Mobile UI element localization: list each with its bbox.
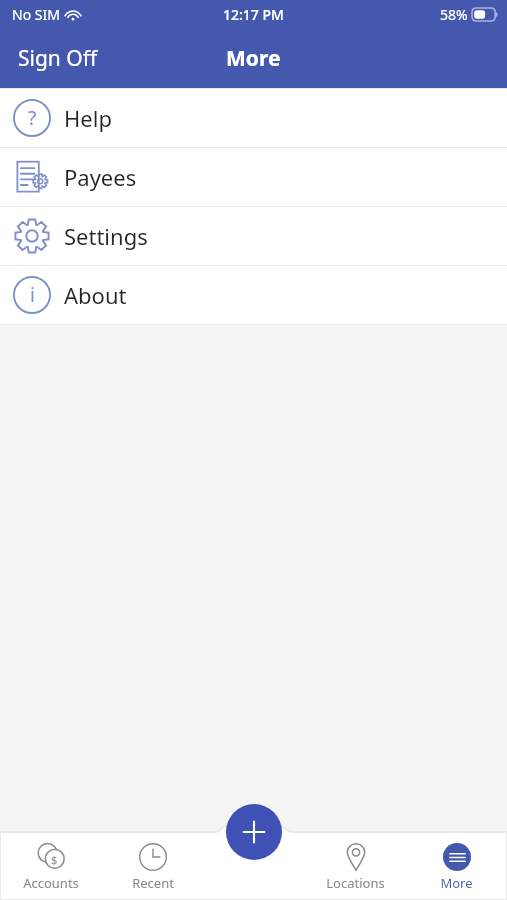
button[interactable]: i (0, 266, 507, 324)
button[interactable]: Payees (0, 148, 507, 206)
button[interactable]: ? (0, 89, 507, 147)
staticText: More (226, 44, 281, 73)
staticText: About (64, 280, 127, 310)
staticText: Recent (132, 874, 174, 892)
staticText: Accounts (23, 874, 79, 892)
staticText: Sign Off (18, 44, 98, 73)
staticText: Payees (64, 162, 137, 192)
staticText: No SIM (12, 5, 60, 24)
button[interactable]: Settings (0, 207, 507, 265)
staticText: $ (51, 852, 58, 867)
staticText: 12:17 PM (223, 5, 284, 24)
button[interactable]: More (406, 832, 507, 900)
button[interactable]: Recent (102, 832, 204, 900)
staticText: Locations (326, 874, 385, 892)
staticText: ? (28, 105, 37, 131)
button[interactable]: Add (226, 804, 282, 860)
button[interactable]: Sign Off (0, 32, 116, 85)
button[interactable]: $ (0, 832, 102, 900)
button[interactable]: Locations (305, 832, 406, 900)
staticText: 58% (440, 5, 468, 24)
staticText: Settings (64, 221, 148, 251)
staticText: i (30, 282, 35, 308)
staticText: More (440, 874, 473, 892)
staticText: Help (64, 103, 112, 133)
